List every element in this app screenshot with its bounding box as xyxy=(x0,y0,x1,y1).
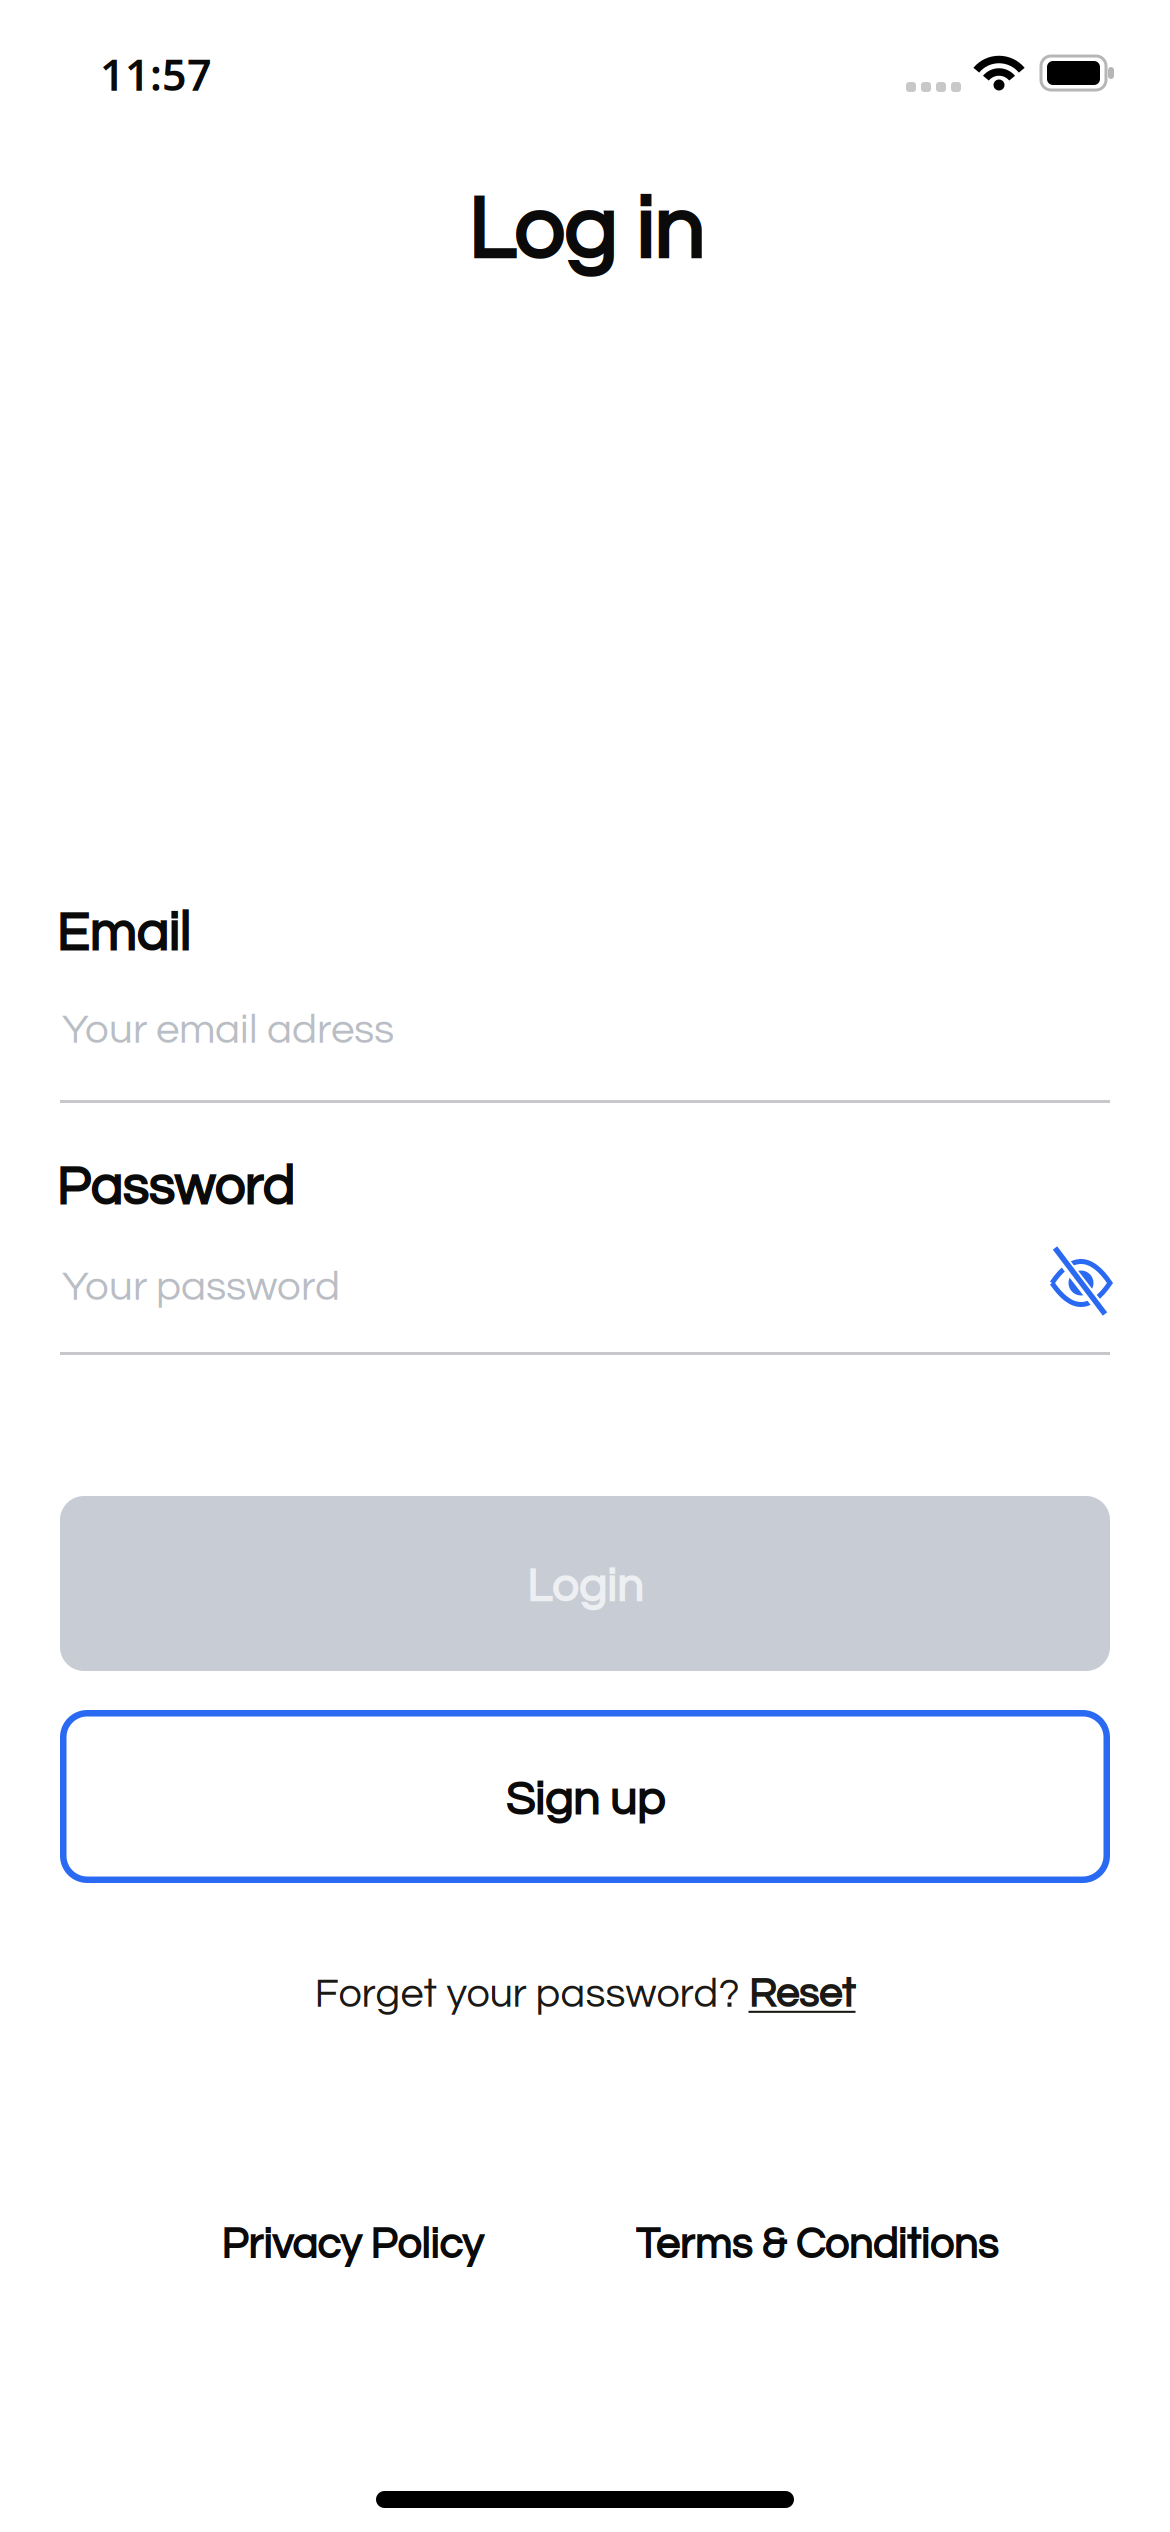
button[interactable]: Forget your password? Reset xyxy=(314,1973,855,2015)
staticText: Privacy Policy xyxy=(221,2223,483,2267)
button[interactable]: Terms & Conditions xyxy=(635,2223,998,2267)
button[interactable]: Sign up xyxy=(60,1710,1110,1883)
staticText: Password xyxy=(56,1160,294,1216)
staticText: Login xyxy=(526,1563,643,1611)
staticText: Your password xyxy=(62,1265,340,1309)
staticText: 11:57 xyxy=(100,45,212,103)
staticText: Terms & Conditions xyxy=(635,2223,998,2267)
button[interactable]: Password, Your password xyxy=(60,1249,1000,1359)
button[interactable]: Privacy Policy xyxy=(221,2223,483,2267)
staticText: Your email adress xyxy=(62,1008,394,1052)
button[interactable]: Show password xyxy=(1036,1238,1126,1328)
button[interactable]: Login xyxy=(60,1496,1110,1671)
staticText: Log in xyxy=(467,185,703,277)
staticText: Email xyxy=(56,906,190,962)
staticText: Forget your password? Reset xyxy=(314,1973,855,2015)
button[interactable]: Email, Your email adress xyxy=(60,993,1110,1103)
staticText: Sign up xyxy=(505,1776,664,1824)
